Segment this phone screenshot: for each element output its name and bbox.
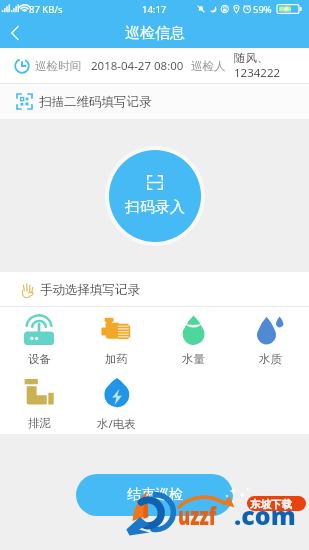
button[interactable]: Back — [0, 18, 30, 48]
staticText: 1234222 — [234, 65, 281, 81]
staticText: 水质 — [259, 352, 282, 366]
staticText: 巡检人 — [191, 59, 226, 73]
button[interactable]: 加药 — [78, 307, 155, 371]
button[interactable]: 设备 — [0, 307, 78, 371]
button[interactable]: 水质 — [232, 307, 309, 371]
staticText: 结束巡检 — [127, 486, 183, 504]
staticText: 水量 — [182, 352, 205, 366]
staticText: 东坡下载 — [250, 498, 292, 511]
staticText: 排泥 — [28, 416, 51, 430]
staticText: 扫码录入 — [125, 198, 185, 217]
staticText: uzzf — [178, 498, 217, 532]
staticText: 14:17 — [142, 3, 167, 16]
button[interactable]: 扫描二维码填写记录 — [0, 84, 309, 119]
button[interactable]: 排泥 — [0, 371, 78, 434]
staticText: 巡检时间 — [35, 59, 81, 73]
staticText: 扫描二维码填写记录 — [39, 94, 152, 110]
staticText: 手动选择填写记录 — [40, 282, 140, 298]
staticText: 设备 — [28, 352, 51, 366]
staticText: 59% — [253, 3, 272, 16]
staticText: 加药 — [105, 352, 128, 366]
staticText: 2018-04-27 08:00 — [91, 58, 184, 74]
staticText: 水/电表 — [97, 416, 136, 432]
button[interactable]: 水量 — [155, 307, 232, 371]
staticText: 巡检信息 — [125, 24, 185, 43]
staticText: 随风、 — [234, 51, 269, 65]
button[interactable]: 水/电表 — [78, 371, 155, 434]
button[interactable]: 扫码录入 — [109, 150, 201, 242]
button[interactable]: 结束巡检 — [76, 474, 233, 516]
staticText: 87 KB/s — [29, 3, 63, 16]
staticText: .com — [234, 498, 296, 532]
